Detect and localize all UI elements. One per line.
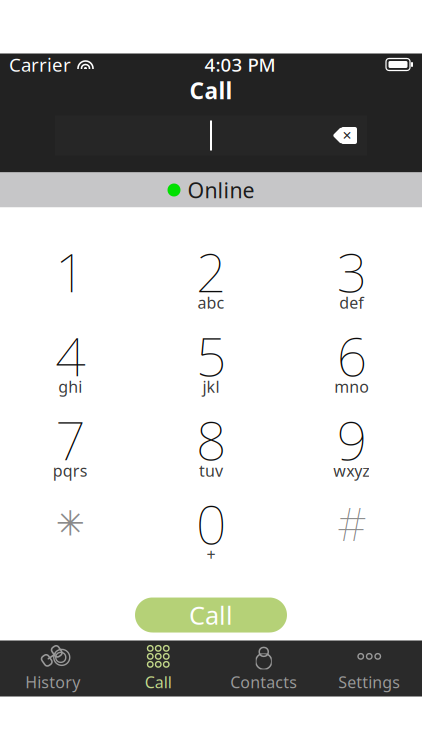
staticText: History	[25, 671, 80, 693]
staticText: mno	[334, 376, 369, 397]
button[interactable]: 1	[0, 237, 141, 321]
staticText: 6	[337, 320, 367, 391]
staticText: +	[206, 544, 215, 565]
staticText: Settings	[338, 671, 400, 693]
button[interactable]: 9	[281, 405, 422, 489]
staticText: pqrs	[53, 460, 88, 481]
button[interactable]: 8	[141, 405, 281, 489]
staticText: 3	[337, 236, 367, 307]
button[interactable]: 7	[0, 405, 141, 489]
staticText: 9	[337, 404, 367, 475]
staticText: 0	[196, 488, 226, 559]
staticText: ✕	[342, 129, 352, 142]
staticText: ✳	[56, 504, 85, 543]
staticText: Call	[145, 671, 172, 693]
staticText: Call	[189, 598, 233, 632]
button[interactable]: ✳	[0, 489, 141, 573]
staticText: 4	[55, 320, 85, 391]
staticText: wxyz	[333, 460, 370, 481]
button[interactable]: 3	[281, 237, 422, 321]
staticText: Carrier	[9, 52, 71, 77]
button[interactable]: 0	[141, 489, 281, 573]
staticText: 1	[55, 236, 85, 307]
staticText: tuv	[199, 460, 223, 481]
staticText: jkl	[202, 376, 219, 397]
staticText: 2	[196, 236, 226, 307]
button[interactable]: 6	[281, 321, 422, 405]
staticText: abc	[197, 292, 224, 313]
button[interactable]: Delete	[327, 122, 361, 148]
button[interactable]: 2	[141, 237, 281, 321]
button[interactable]: Settings	[316, 642, 422, 694]
staticText: def	[339, 292, 364, 313]
staticText: Contacts	[230, 671, 297, 693]
button[interactable]: Contacts	[211, 642, 316, 694]
staticText: 4:03 PM	[204, 52, 275, 77]
button[interactable]: Call	[105, 642, 211, 694]
button[interactable]: #	[281, 489, 422, 573]
button[interactable]: ℘	[0, 642, 105, 694]
button[interactable]: 4	[0, 321, 141, 405]
staticText: 5	[196, 320, 226, 391]
staticText: ghi	[58, 376, 82, 397]
staticText: 7	[55, 404, 85, 475]
button[interactable]: 5	[141, 321, 281, 405]
button[interactable]: Call	[135, 597, 287, 632]
staticText: #	[337, 493, 366, 554]
staticText: Call	[189, 75, 232, 105]
staticText: 8	[196, 404, 226, 475]
staticText: Online	[187, 176, 254, 204]
